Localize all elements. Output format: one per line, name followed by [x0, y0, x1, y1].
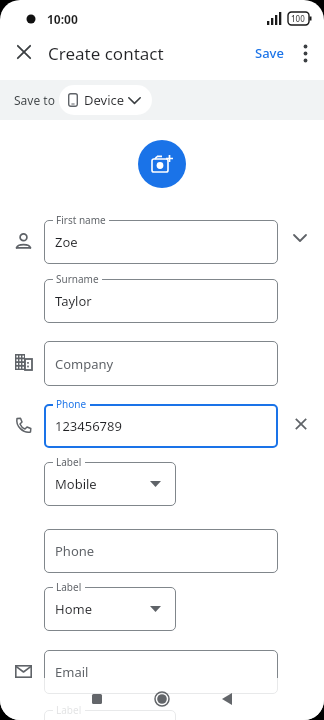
button[interactable] [286, 224, 314, 252]
button[interactable]: Company [44, 341, 278, 386]
staticText: Home [55, 600, 92, 618]
staticText: Label [56, 703, 82, 717]
staticText: Phone [55, 542, 95, 560]
button[interactable]: Zoe [44, 220, 278, 264]
staticText: Phone [56, 397, 87, 411]
staticText: 10:00 [47, 11, 78, 27]
button[interactable]: Device [59, 85, 152, 115]
button[interactable] [8, 38, 38, 68]
staticText: Create contact [48, 42, 164, 65]
button[interactable] [44, 710, 176, 720]
staticText: Taylor [55, 292, 92, 310]
button[interactable] [288, 411, 314, 437]
staticText: Device [84, 91, 125, 109]
button[interactable]: Home [44, 587, 176, 631]
button[interactable]: Save [248, 38, 290, 68]
button[interactable] [138, 140, 186, 188]
staticText: Save to [14, 92, 55, 108]
button[interactable]: Taylor [44, 279, 278, 323]
staticText: 123456789 [55, 417, 122, 435]
staticText: Zoe [55, 233, 78, 251]
staticText: Label [56, 455, 82, 469]
button[interactable] [138, 678, 186, 720]
staticText: First name [56, 213, 106, 227]
staticText: Save [255, 44, 284, 62]
button[interactable]: Email [44, 650, 278, 694]
staticText: Email [55, 663, 89, 681]
button[interactable]: Phone [44, 529, 278, 573]
staticText: 100 [291, 13, 305, 24]
button[interactable]: 123456789 [44, 404, 278, 448]
button[interactable] [203, 678, 251, 720]
button[interactable] [73, 678, 121, 720]
staticText: Label [56, 580, 82, 594]
button[interactable] [292, 38, 320, 68]
staticText: Surname [56, 272, 99, 286]
button[interactable]: Mobile [44, 462, 176, 506]
staticText: Mobile [55, 475, 97, 493]
staticText: Company [55, 355, 114, 373]
